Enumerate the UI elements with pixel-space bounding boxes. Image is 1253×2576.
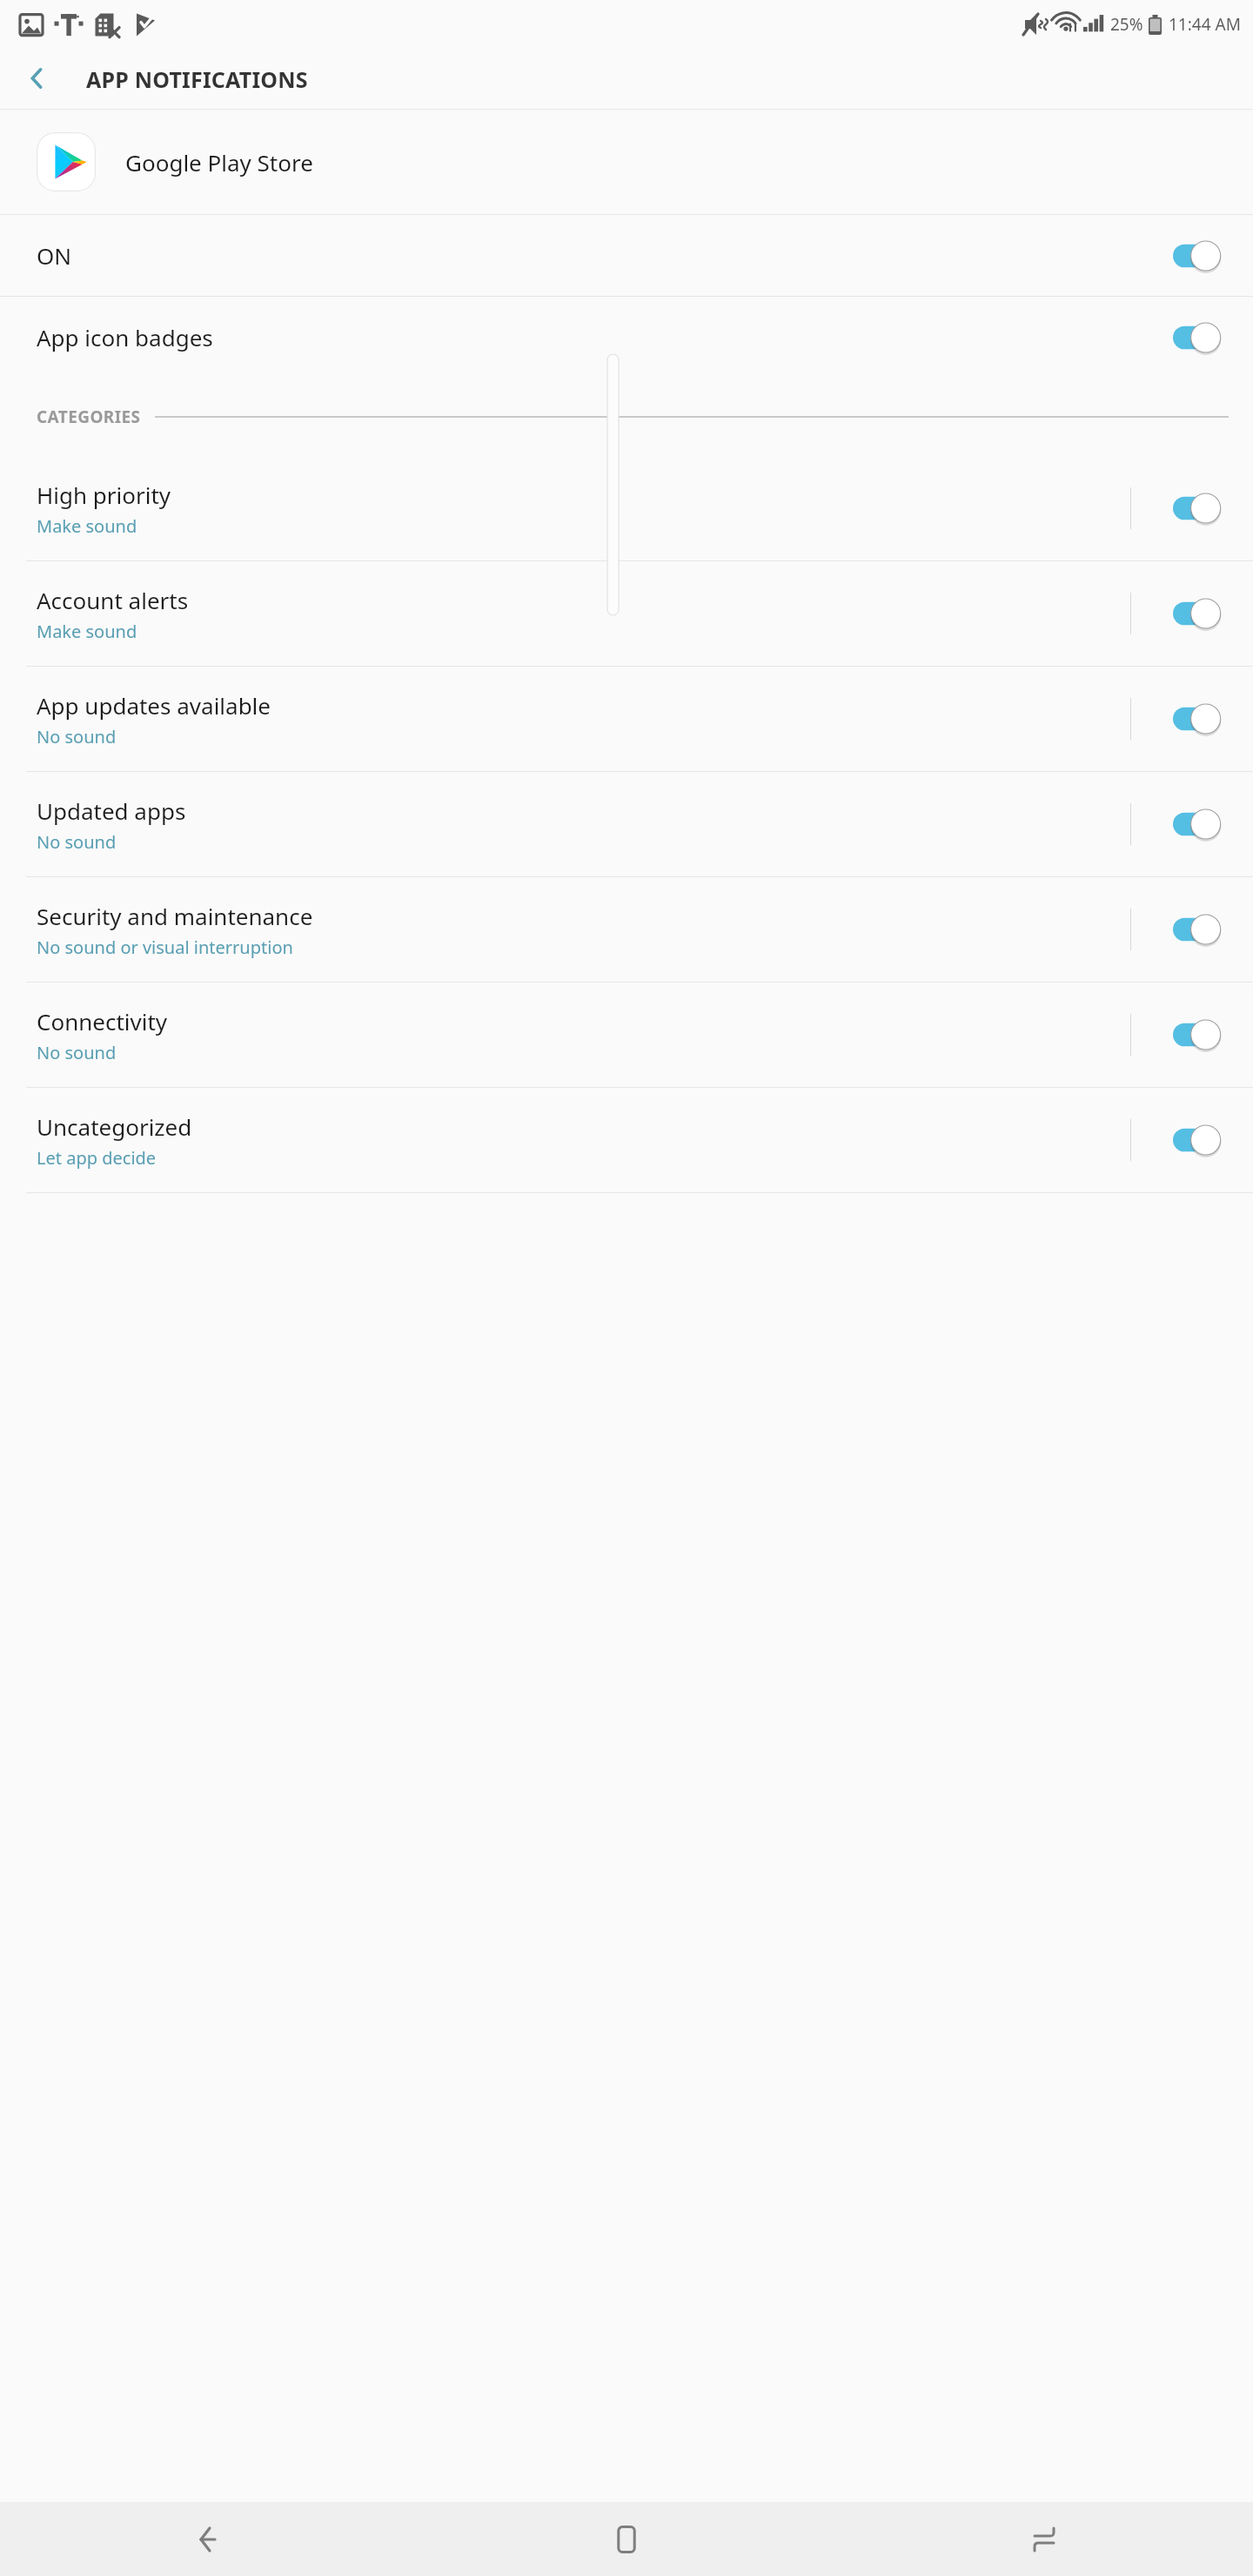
staticText: ON	[37, 240, 1173, 271]
staticText: Security and maintenance	[37, 901, 313, 931]
staticText: APP NOTIFICATIONS	[86, 64, 308, 94]
staticText: No sound	[37, 830, 117, 854]
staticText: Make sound	[37, 620, 137, 643]
button[interactable]: Toggle on	[1173, 1015, 1227, 1055]
staticText: Let app decide	[37, 1146, 157, 1170]
staticText: Updated apps	[37, 795, 186, 826]
staticText: Make sound	[37, 514, 137, 538]
button[interactable]: Toggle on	[1173, 236, 1227, 276]
button[interactable]: Toggle on	[1173, 594, 1227, 634]
staticText: App icon badges	[37, 322, 1173, 352]
button[interactable]: Toggle on	[1173, 699, 1227, 739]
staticText: Uncategorized	[37, 1111, 192, 1142]
button[interactable]: Account alerts	[0, 561, 1253, 666]
button[interactable]: Toggle on	[1173, 488, 1227, 528]
button[interactable]: App icon badges	[0, 297, 1253, 378]
staticText: 11:44 AM	[1169, 13, 1241, 36]
button[interactable]: Toggle on	[1173, 1120, 1227, 1160]
button[interactable]: Back	[0, 2502, 418, 2576]
button[interactable]: Toggle on	[1173, 804, 1227, 844]
button[interactable]: Google Play Store	[0, 110, 1253, 214]
staticText: CATEGORIES	[37, 406, 141, 428]
button[interactable]: Back	[12, 52, 64, 104]
staticText: No sound or visual interruption	[37, 936, 293, 959]
button[interactable]: ON	[0, 215, 1253, 296]
staticText: Google Play Store	[125, 147, 313, 178]
button[interactable]: Uncategorized	[0, 1088, 1253, 1192]
button[interactable]: Toggle on	[1173, 318, 1227, 358]
staticText: 25%	[1110, 13, 1143, 36]
staticText: App updates available	[37, 690, 271, 721]
button[interactable]: Home	[418, 2502, 835, 2576]
button[interactable]: Recents	[835, 2502, 1253, 2576]
button[interactable]: Security and maintenance	[0, 877, 1253, 982]
button[interactable]: Connectivity	[0, 983, 1253, 1087]
button[interactable]: Updated apps	[0, 772, 1253, 876]
staticText: No sound	[37, 725, 117, 748]
staticText: No sound	[37, 1041, 117, 1064]
staticText: Connectivity	[37, 1006, 168, 1036]
staticText: High priority	[37, 480, 171, 510]
staticText: Account alerts	[37, 585, 189, 615]
button[interactable]: High priority	[0, 456, 1253, 560]
button[interactable]: App updates available	[0, 667, 1253, 771]
button[interactable]: Toggle on	[1173, 909, 1227, 949]
